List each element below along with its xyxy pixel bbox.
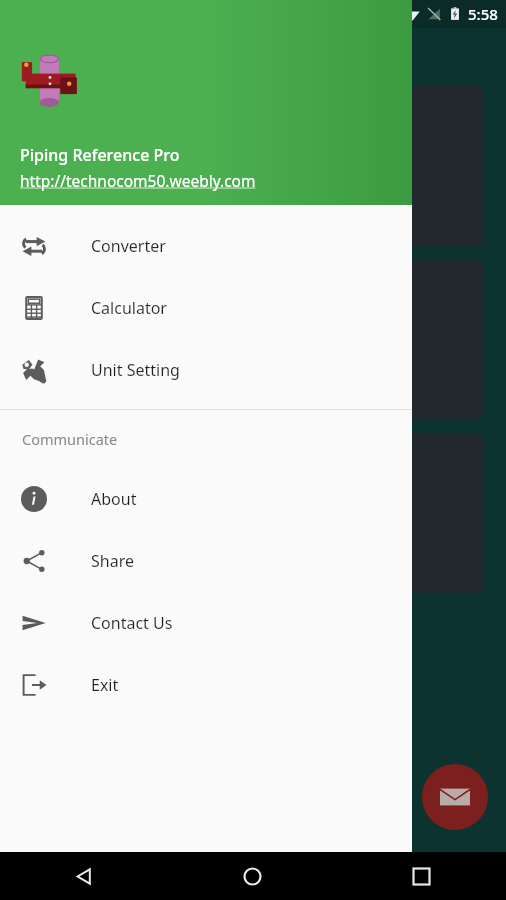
button[interactable]: MATERIALS xyxy=(22,434,484,594)
button[interactable]: Recents xyxy=(337,852,506,900)
staticText: Contact Us xyxy=(91,612,173,634)
button[interactable]: Share xyxy=(0,530,412,592)
staticText: 5:58 xyxy=(468,4,498,24)
button[interactable]: Converter xyxy=(0,215,412,277)
staticText: Converter xyxy=(91,235,166,257)
button[interactable]: Home xyxy=(168,852,337,900)
staticText: Share xyxy=(91,550,134,572)
button[interactable]: Contact Us xyxy=(422,764,488,830)
button[interactable]: Calculator xyxy=(0,277,412,339)
staticText: Exit xyxy=(91,674,119,696)
staticText: Calculator xyxy=(91,297,167,319)
staticText: http://technocom50.weebly.com xyxy=(20,170,256,191)
staticText: Unit Setting xyxy=(91,359,180,381)
button[interactable]: FLANGE xyxy=(22,86,484,246)
staticText: Piping Reference Pro xyxy=(20,144,180,166)
staticText: Communicate xyxy=(22,429,118,449)
button[interactable]: About xyxy=(0,468,412,530)
button[interactable]: Exit xyxy=(0,654,412,716)
button[interactable]: Contact Us xyxy=(0,592,412,654)
button[interactable]: Back xyxy=(0,852,168,900)
button[interactable]: SHOE xyxy=(22,260,484,420)
button[interactable]: Unit Setting xyxy=(0,339,412,401)
staticText: About xyxy=(91,488,137,510)
